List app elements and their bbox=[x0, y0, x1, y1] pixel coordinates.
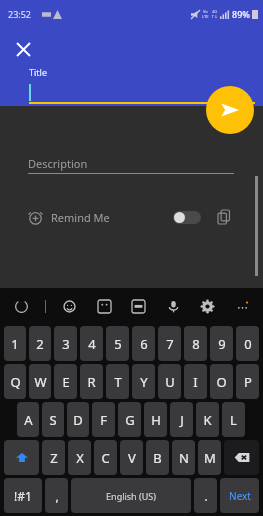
staticText: K bbox=[203, 411, 212, 429]
button[interactable]: X bbox=[68, 440, 91, 475]
button[interactable]: 2 bbox=[29, 326, 51, 361]
button[interactable]: Shift bbox=[4, 440, 39, 475]
button[interactable]: 4 bbox=[80, 326, 103, 361]
staticText: Y bbox=[140, 373, 148, 391]
button[interactable]: D bbox=[67, 402, 89, 437]
staticText: Z bbox=[50, 449, 58, 467]
button[interactable]: Voice input bbox=[162, 295, 184, 317]
staticText: S bbox=[49, 411, 57, 429]
button[interactable]: Close bbox=[10, 36, 36, 62]
button[interactable]: Backspace bbox=[224, 440, 259, 475]
button[interactable]: English (US) bbox=[71, 478, 191, 513]
button[interactable]: J bbox=[170, 402, 193, 437]
staticText: W bbox=[34, 373, 47, 391]
staticText: R bbox=[87, 373, 96, 391]
button[interactable]: Q bbox=[4, 364, 26, 399]
staticText: Vo bbox=[203, 9, 208, 14]
button[interactable]: P bbox=[236, 364, 259, 399]
button[interactable]: Y bbox=[132, 364, 155, 399]
staticText: H bbox=[151, 411, 161, 429]
staticText: F bbox=[100, 411, 107, 429]
button[interactable]: U bbox=[158, 364, 181, 399]
button[interactable]: 5 bbox=[106, 326, 129, 361]
button[interactable]: B bbox=[146, 440, 169, 475]
button[interactable]: 3 bbox=[54, 326, 77, 361]
staticText: English (US) bbox=[106, 490, 156, 502]
button[interactable]: 6 bbox=[132, 326, 155, 361]
button[interactable]: W bbox=[29, 364, 51, 399]
staticText: Next bbox=[229, 489, 251, 503]
staticText: 2 bbox=[36, 335, 44, 353]
staticText: !#1 bbox=[14, 488, 32, 504]
staticText: Title bbox=[29, 66, 47, 78]
button[interactable]: Stickers bbox=[93, 295, 115, 317]
button[interactable]: O bbox=[210, 364, 233, 399]
staticText: E bbox=[62, 373, 70, 391]
button[interactable]: V bbox=[120, 440, 143, 475]
button[interactable]: Remind Me bbox=[28, 202, 235, 232]
button[interactable]: Send bbox=[206, 86, 254, 134]
staticText: T bbox=[114, 373, 122, 391]
button[interactable]: !#1 bbox=[4, 478, 42, 513]
staticText: A bbox=[24, 411, 33, 429]
button[interactable]: Emoji bbox=[58, 295, 80, 317]
staticText: N bbox=[179, 449, 189, 467]
button[interactable]: M bbox=[198, 440, 221, 475]
button[interactable]: 1 bbox=[4, 326, 26, 361]
staticText: Q bbox=[10, 373, 21, 391]
staticText: , bbox=[55, 488, 59, 504]
staticText: LTE bbox=[202, 14, 209, 19]
button[interactable]: K bbox=[196, 402, 219, 437]
button[interactable]: Settings bbox=[196, 295, 218, 317]
button[interactable]: Z bbox=[42, 440, 65, 475]
staticText: 4 bbox=[88, 335, 96, 353]
staticText: I bbox=[193, 373, 198, 391]
button[interactable]: R bbox=[80, 364, 103, 399]
staticText: Remind Me bbox=[51, 210, 110, 225]
staticText: . bbox=[204, 488, 208, 504]
staticText: 23:52 bbox=[8, 8, 32, 20]
button[interactable]: H bbox=[144, 402, 167, 437]
button[interactable] bbox=[173, 211, 201, 224]
staticText: 9 bbox=[218, 335, 226, 353]
button[interactable]: , bbox=[45, 478, 68, 513]
staticText: M bbox=[204, 449, 216, 467]
staticText: 6 bbox=[140, 335, 148, 353]
staticText: C bbox=[101, 449, 110, 467]
button[interactable]: Translate bbox=[10, 295, 32, 317]
button[interactable]: N bbox=[172, 440, 195, 475]
staticText: 3 bbox=[62, 335, 70, 353]
staticText: O bbox=[216, 373, 227, 391]
staticText: L bbox=[230, 411, 237, 429]
button[interactable]: C bbox=[94, 440, 117, 475]
button[interactable]: . bbox=[194, 478, 217, 513]
button[interactable]: 0 bbox=[236, 326, 259, 361]
button[interactable]: 9 bbox=[210, 326, 233, 361]
button[interactable]: More options bbox=[231, 295, 253, 317]
staticText: V bbox=[128, 449, 136, 467]
button[interactable]: F bbox=[92, 402, 115, 437]
staticText: P bbox=[244, 373, 252, 391]
staticText: G bbox=[125, 411, 135, 429]
staticText: 4G bbox=[212, 9, 218, 14]
button[interactable]: A bbox=[17, 402, 39, 437]
button[interactable]: S bbox=[42, 402, 64, 437]
button[interactable]: T bbox=[106, 364, 129, 399]
staticText: 1 bbox=[11, 335, 19, 353]
staticText: D bbox=[73, 411, 83, 429]
staticText: 5 bbox=[114, 335, 122, 353]
staticText: U bbox=[165, 373, 175, 391]
button[interactable]: I bbox=[184, 364, 207, 399]
button[interactable]: Copy bbox=[215, 207, 235, 227]
button[interactable]: 7 bbox=[158, 326, 181, 361]
button[interactable]: E bbox=[54, 364, 77, 399]
staticText: ↑↓ bbox=[211, 14, 218, 19]
button[interactable]: L bbox=[222, 402, 245, 437]
button[interactable]: G bbox=[118, 402, 141, 437]
button[interactable]: GIF bbox=[127, 295, 149, 317]
button[interactable]: 8 bbox=[184, 326, 207, 361]
button[interactable]: Next bbox=[220, 478, 259, 513]
staticText: 0 bbox=[244, 335, 252, 353]
staticText: B bbox=[153, 449, 162, 467]
staticText: 8 bbox=[192, 335, 200, 353]
